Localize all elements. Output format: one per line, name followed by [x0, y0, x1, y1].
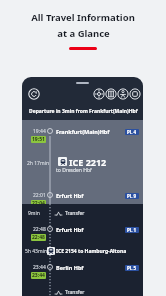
button[interactable]: 5h 43min — [22, 246, 143, 258]
staticText: Pl. 4 — [127, 129, 137, 135]
staticText: Pl. 1 — [127, 227, 137, 233]
staticText: Frankfurt(Main)Hbf — [56, 128, 110, 135]
staticText: ICE 2212 — [69, 156, 107, 168]
staticText: 22:48 — [33, 226, 46, 233]
staticText: at a Glance — [57, 27, 110, 40]
staticText: All Travel Information — [31, 11, 135, 24]
button[interactable]: Transfer — [22, 288, 143, 296]
staticText: Berlin Hbf — [56, 264, 84, 271]
button[interactable]: Refresh — [28, 88, 40, 100]
staticText: Erfurt Hbf — [56, 192, 84, 199]
staticText: Transfer — [65, 289, 85, 296]
staticText: Departure in 3min from Frankfurt(Main)Hb… — [29, 108, 138, 115]
staticText: Pl. 5 — [127, 265, 137, 271]
staticText: 22:01 — [33, 192, 46, 199]
button[interactable]: 2h 17min — [22, 157, 143, 187]
button[interactable]: Map — [129, 88, 141, 100]
staticText: 2h 17min — [27, 160, 50, 167]
button[interactable]: 9min — [22, 209, 143, 219]
staticText: Transfer — [65, 210, 85, 217]
staticText: ICE 2154 to Hamburg-Altona — [56, 248, 127, 255]
button[interactable]: Accessibility — [117, 88, 129, 100]
staticText: Erfurt Hbf — [56, 226, 84, 233]
staticText: 5h 43min — [25, 248, 48, 255]
button[interactable]: 22:01 — [22, 190, 143, 206]
button[interactable]: 19:44 — [22, 126, 143, 142]
button[interactable]: Train information — [105, 88, 117, 100]
staticText: 23:44 — [33, 264, 46, 271]
staticText: 19:44 — [33, 128, 46, 135]
staticText: Pl. 9 — [127, 193, 137, 199]
button[interactable]: 22:48 — [22, 224, 143, 240]
button[interactable]: Settings — [93, 88, 105, 100]
staticText: 19:51 — [32, 136, 45, 143]
staticText: 22:04 — [32, 200, 45, 207]
staticText: 23:44 — [32, 272, 45, 279]
staticText: to Dresden Hbf — [56, 167, 92, 174]
button[interactable]: 23:44 — [22, 262, 143, 278]
staticText: 9min — [28, 210, 40, 217]
staticText: 22:48 — [32, 234, 45, 241]
